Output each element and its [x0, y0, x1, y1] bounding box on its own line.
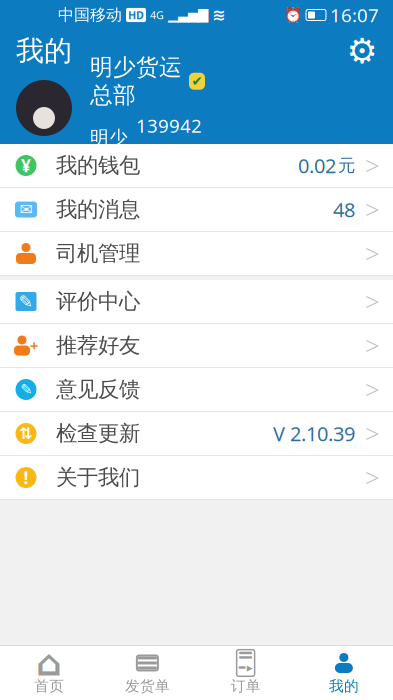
staticText: 48	[333, 196, 355, 223]
staticText: HD	[128, 8, 144, 22]
staticText: 13994268774	[136, 113, 202, 163]
staticText: !	[23, 466, 28, 489]
staticText: ▁▃▅▇	[168, 7, 208, 22]
staticText: 意见反馈	[56, 376, 140, 403]
button[interactable]: ▸	[196, 646, 295, 700]
staticText: >	[365, 373, 379, 406]
staticText: 我的	[16, 34, 72, 68]
staticText: 中国移动	[58, 5, 122, 25]
staticText: >	[365, 285, 379, 318]
button[interactable]: ⌂	[0, 646, 98, 700]
staticText: ⏰	[284, 7, 302, 23]
staticText: 关于我们	[56, 464, 140, 491]
staticText: 4G	[150, 8, 164, 22]
staticText: 元	[338, 155, 355, 176]
staticText: ≋	[212, 6, 225, 24]
staticText: >	[365, 417, 379, 450]
staticText: 订单	[231, 677, 261, 695]
staticText: 16:07	[330, 3, 379, 27]
staticText: ⌂	[36, 643, 62, 683]
button[interactable]: +	[0, 324, 393, 368]
button[interactable]: ✉	[0, 188, 393, 232]
button[interactable]: !	[0, 456, 393, 500]
staticText: ⇅	[19, 424, 32, 443]
staticText: ⚙	[346, 31, 377, 71]
staticText: 首页	[34, 677, 64, 695]
staticText: >	[365, 329, 379, 362]
staticText: 我的钱包	[56, 152, 140, 179]
staticText: >	[365, 149, 379, 182]
staticText: V 2.10.39	[273, 420, 355, 447]
button[interactable]: ⇅	[0, 412, 393, 456]
staticText: >	[365, 193, 379, 226]
button[interactable]: ✎	[0, 368, 393, 412]
staticText: 评价中心	[56, 288, 140, 315]
staticText: 发货单	[125, 677, 170, 695]
staticText: ▸	[247, 661, 253, 674]
staticText: ✉	[19, 200, 32, 219]
staticText: 明少货运总部	[90, 53, 182, 109]
staticText: +	[30, 336, 38, 355]
staticText: 司机管理	[56, 240, 140, 267]
button[interactable]: 发货单	[98, 646, 196, 700]
staticText: ✎	[18, 292, 33, 311]
button[interactable]: ¥	[0, 144, 393, 188]
staticText: 检查更新	[56, 420, 140, 447]
button[interactable]: Settings	[345, 34, 379, 68]
staticText: ¥	[21, 154, 31, 177]
staticText: 0.02	[298, 152, 336, 179]
button[interactable]: ✎	[0, 280, 393, 324]
staticText: 推荐好友	[56, 332, 140, 359]
button[interactable]: 我的	[295, 646, 393, 700]
staticText: ✔	[191, 74, 202, 89]
staticText: 明少	[90, 126, 128, 149]
staticText: 我的	[329, 677, 359, 695]
button[interactable]: 司机管理	[0, 232, 393, 276]
staticText: 我的消息	[56, 196, 140, 223]
staticText: ✎	[20, 381, 32, 398]
staticText: >	[365, 237, 379, 270]
staticText: >	[365, 461, 379, 494]
